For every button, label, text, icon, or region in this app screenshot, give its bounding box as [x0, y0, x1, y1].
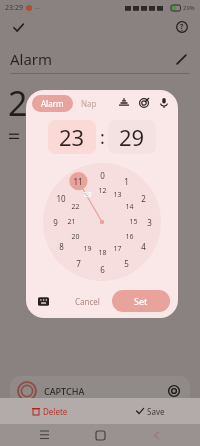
staticText: 29% — [183, 4, 195, 12]
staticText: Set — [134, 295, 148, 307]
staticText: ··· — [35, 4, 40, 12]
staticText: 21 — [67, 217, 76, 227]
staticText: Alarm — [10, 49, 53, 69]
staticText: 11 — [73, 176, 83, 187]
button[interactable]: Keyboard input — [34, 292, 52, 310]
staticText: 3 — [147, 217, 152, 228]
button[interactable]: CAPTCHA — [18, 376, 182, 406]
staticText: 15 — [129, 217, 138, 227]
button[interactable]: Save — [100, 398, 200, 424]
staticText: Cancel — [75, 296, 100, 307]
staticText: 23 — [83, 190, 92, 200]
button[interactable]: Bedtime — [116, 95, 132, 111]
staticText: 23 — [59, 122, 85, 152]
button[interactable]: Recents — [32, 424, 56, 446]
staticText: 9 — [53, 217, 58, 228]
button[interactable]: Confirm — [8, 17, 28, 37]
staticText: 6 — [100, 264, 105, 275]
button[interactable]: Alarm — [32, 95, 73, 112]
staticText: 5 — [124, 258, 129, 269]
staticText: 0 — [100, 170, 105, 181]
button[interactable]: CAPTCHA settings — [166, 383, 182, 399]
staticText: 14 — [125, 202, 134, 212]
staticText: 23:29 — [5, 3, 23, 13]
staticText: CAPTCHA — [44, 385, 85, 397]
staticText: 17 — [113, 244, 122, 254]
button[interactable]: Back — [144, 424, 168, 446]
staticText: 4 — [141, 241, 146, 252]
staticText: 8 — [59, 241, 64, 252]
staticText: Save — [147, 406, 165, 417]
staticText: 7 — [76, 258, 81, 269]
staticText: 22 — [71, 202, 80, 212]
button[interactable]: Voice — [156, 95, 172, 111]
button[interactable]: Edit — [172, 50, 190, 68]
staticText: Delete — [43, 406, 68, 417]
button[interactable]: 23 — [48, 120, 96, 154]
button[interactable]: Nap — [73, 95, 105, 112]
button[interactable]: Target — [136, 95, 152, 111]
staticText: : — [100, 125, 105, 150]
button[interactable]: Cancel — [67, 292, 108, 311]
staticText: 12 — [98, 186, 107, 196]
staticText: 20 — [71, 232, 80, 242]
staticText: 1 — [124, 176, 129, 187]
staticText: Nap — [81, 98, 97, 109]
button[interactable]: Home — [88, 424, 112, 446]
button[interactable]: Help — [172, 17, 192, 37]
button[interactable]: Set — [112, 290, 170, 312]
staticText: 29 — [119, 122, 145, 152]
staticText: 18 — [98, 248, 107, 258]
button[interactable]: Delete — [0, 398, 100, 424]
staticText: 16 — [125, 232, 134, 242]
staticText: 19 — [83, 244, 92, 254]
staticText: ? — [180, 22, 184, 32]
button[interactable]: 29 — [108, 120, 156, 154]
staticText: 2 — [141, 193, 146, 204]
staticText: 2 — [8, 80, 28, 126]
staticText: 10 — [56, 193, 66, 204]
staticText: Alarm — [41, 98, 64, 109]
staticText: 13 — [113, 190, 122, 200]
